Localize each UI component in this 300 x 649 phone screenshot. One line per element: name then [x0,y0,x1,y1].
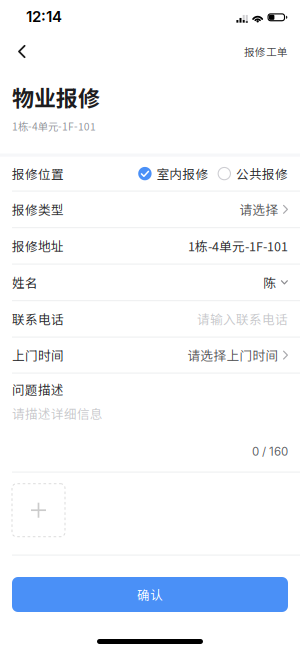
staticText: 报修类型 [12,200,64,218]
staticText: 上门时间 [12,346,64,364]
staticText: 陈 [263,273,276,291]
staticText: 报修工单 [244,44,288,59]
staticText: 请描述详细信息 [12,404,103,422]
staticText: 请选择上门时间 [187,346,278,364]
staticText: 请选择 [239,200,278,218]
button[interactable]: 报修工单 [200,33,300,70]
button[interactable]: Add photo [11,483,65,537]
staticText: 请输入联系电话 [197,310,288,328]
staticText: 物业报修 [12,81,100,113]
staticText: 姓名 [12,273,38,291]
staticText: 问题描述 [12,380,64,398]
staticText: 1栋-4单元-1F-101 [12,118,96,133]
staticText: 12:14 [26,7,62,25]
staticText: 0 / 160 [252,444,288,458]
staticText: 确认 [137,585,163,604]
staticText: 报修位置 [12,164,64,183]
button[interactable]: Back [0,33,60,70]
staticText: 报修地址 [12,237,64,255]
staticText: 1栋-4单元-1F-101 [188,237,288,255]
staticText: 公共报修 [236,164,288,183]
button[interactable]: 确认 [12,577,288,612]
staticText: 联系电话 [12,310,64,328]
staticText: 室内报修 [157,164,209,183]
